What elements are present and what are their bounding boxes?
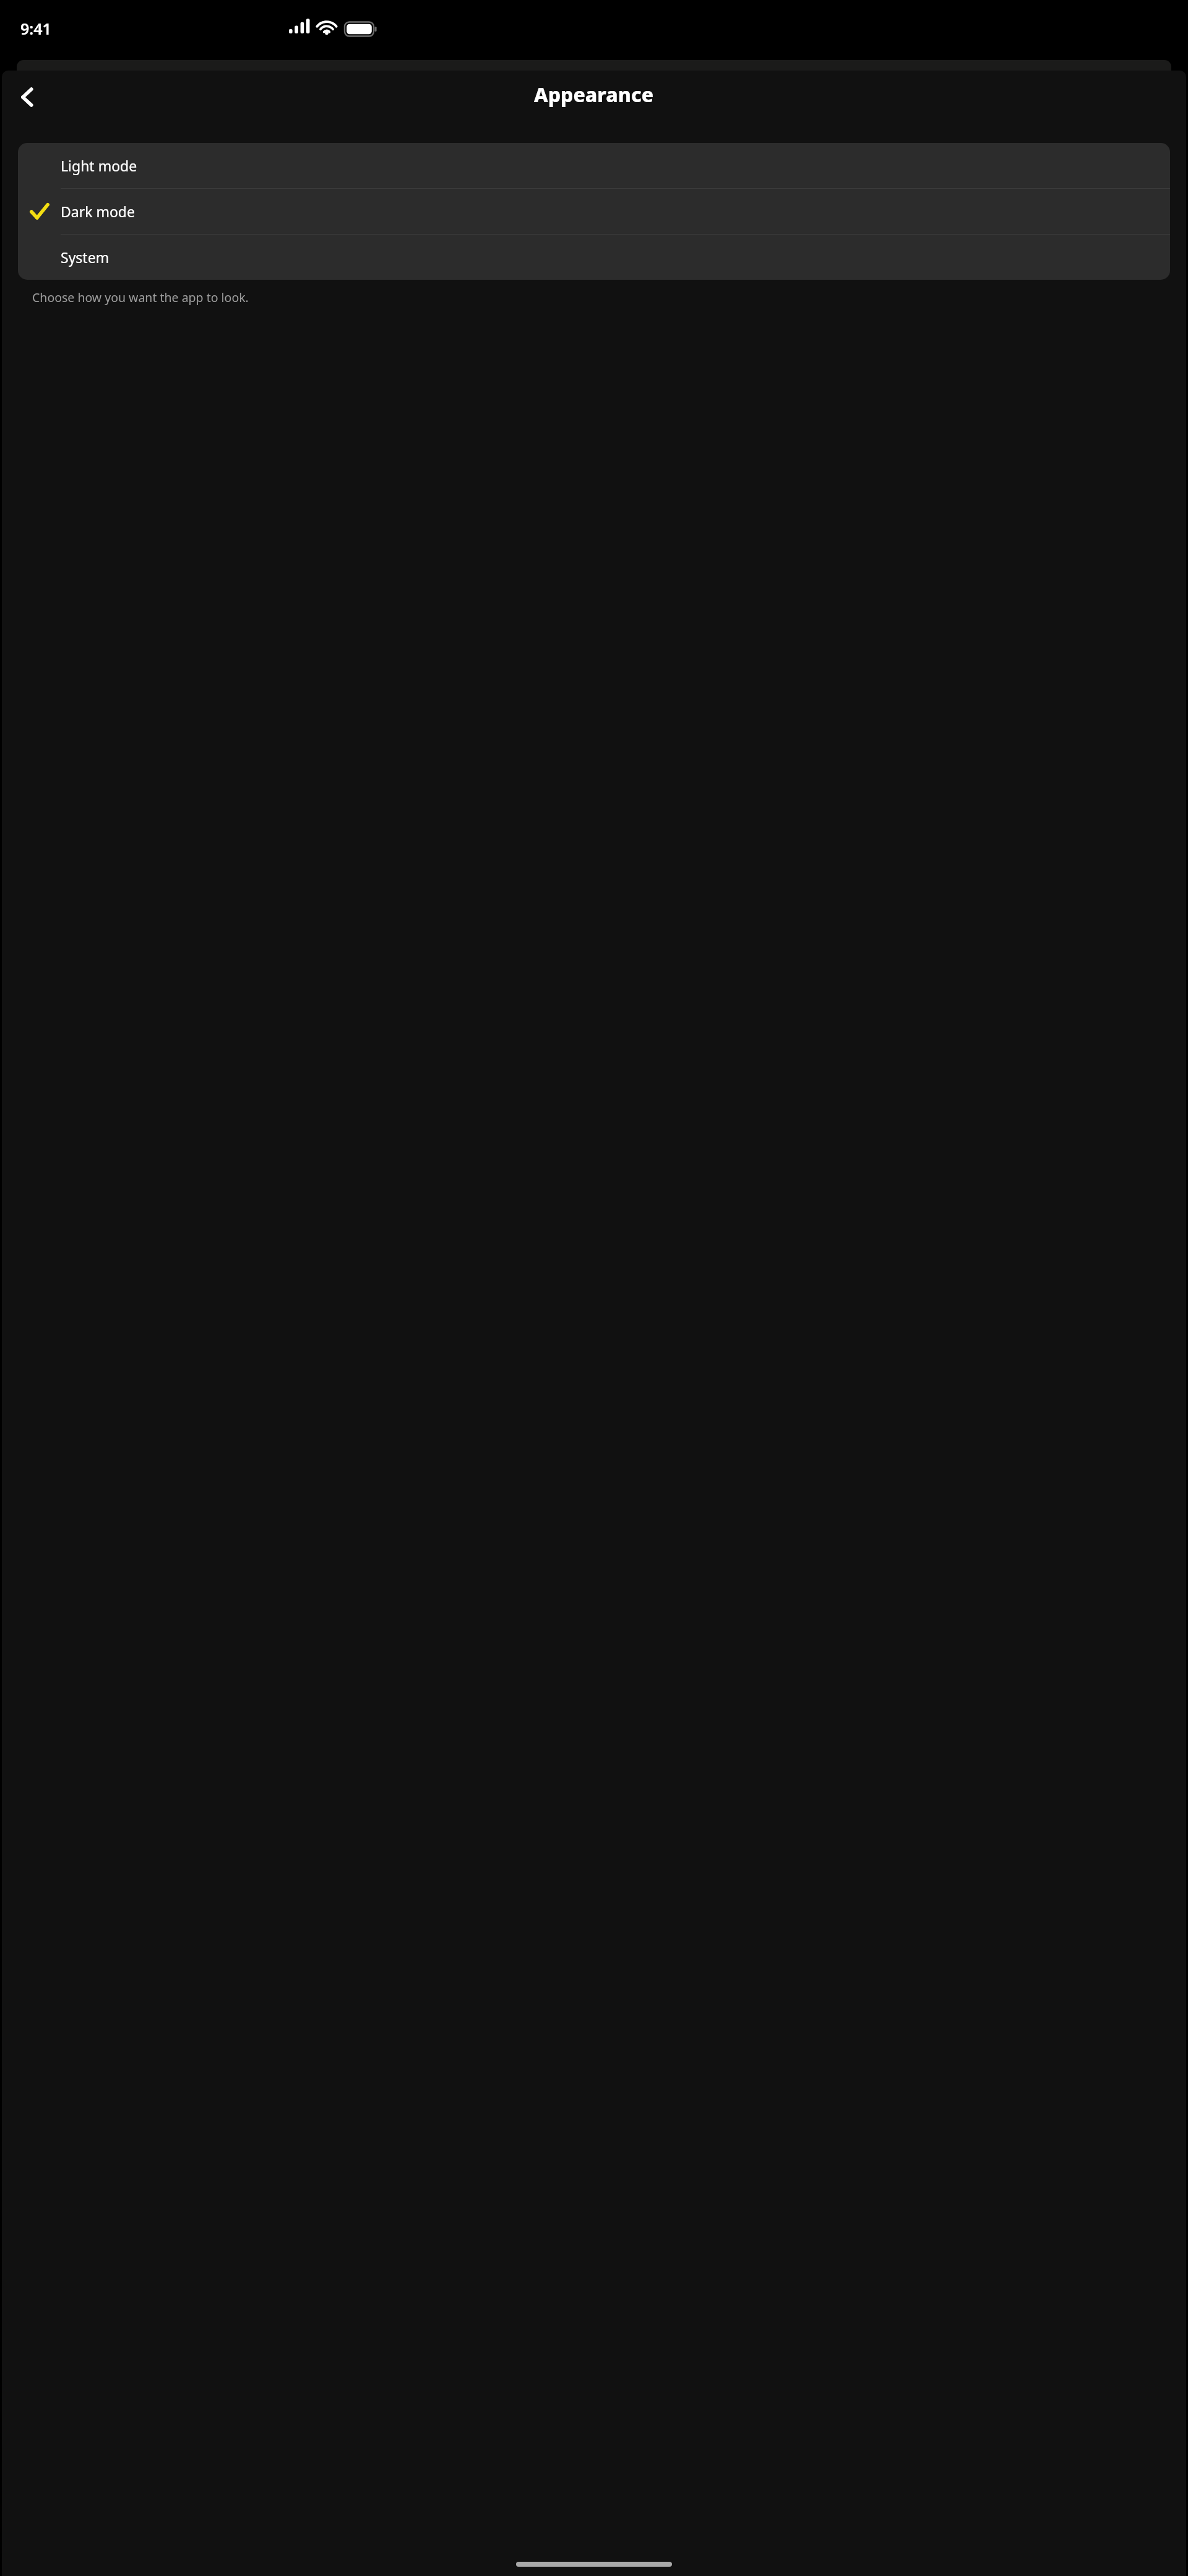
button[interactable]: Light mode — [18, 143, 1170, 188]
button[interactable]: Back — [8, 78, 46, 116]
button[interactable]: System — [18, 235, 1170, 280]
staticText: Choose how you want the app to look. — [32, 289, 249, 306]
staticText: 9:41 — [20, 18, 51, 39]
staticText: Dark mode — [61, 202, 135, 221]
staticText: System — [61, 248, 110, 267]
staticText: Light mode — [61, 156, 137, 175]
staticText: Appearance — [534, 81, 654, 108]
button[interactable]: Dark mode — [18, 189, 1170, 234]
